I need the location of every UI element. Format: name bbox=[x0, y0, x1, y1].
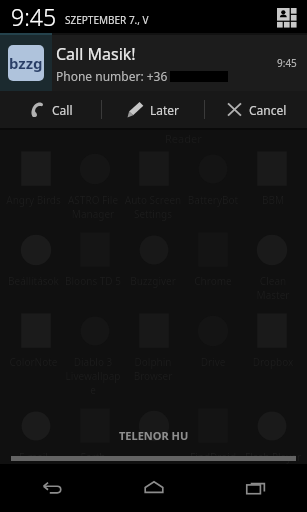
button[interactable]: Quick settings bbox=[273, 4, 299, 30]
button[interactable]: Back bbox=[0, 464, 103, 512]
staticText: TELENOR HU bbox=[119, 428, 189, 443]
staticText: SZEPTEMBER 7., V bbox=[65, 13, 149, 27]
button[interactable]: Recents bbox=[205, 464, 307, 512]
staticText: 9:45 bbox=[277, 56, 297, 70]
button[interactable]: bzzg bbox=[0, 35, 307, 91]
staticText: Cancel bbox=[249, 102, 287, 118]
staticText: bzzg bbox=[9, 53, 43, 73]
button[interactable]: Cancel bbox=[205, 91, 307, 128]
staticText: E-mail bbox=[4, 450, 63, 464]
button[interactable]: Call bbox=[0, 91, 101, 128]
staticText: Call Masik! bbox=[56, 43, 136, 65]
staticText bbox=[123, 450, 183, 464]
staticText: FindDroid bbox=[183, 450, 243, 464]
button[interactable]: Later bbox=[102, 91, 204, 128]
staticText: Earth bbox=[63, 450, 123, 464]
staticText: Phone number: +36 bbox=[56, 68, 168, 84]
staticText: 9:45 bbox=[11, 1, 57, 32]
staticText: Later bbox=[150, 102, 180, 118]
button[interactable]: Home bbox=[103, 464, 205, 512]
staticText: Flash Player Settings bbox=[243, 450, 303, 478]
staticText: Call bbox=[52, 102, 73, 118]
